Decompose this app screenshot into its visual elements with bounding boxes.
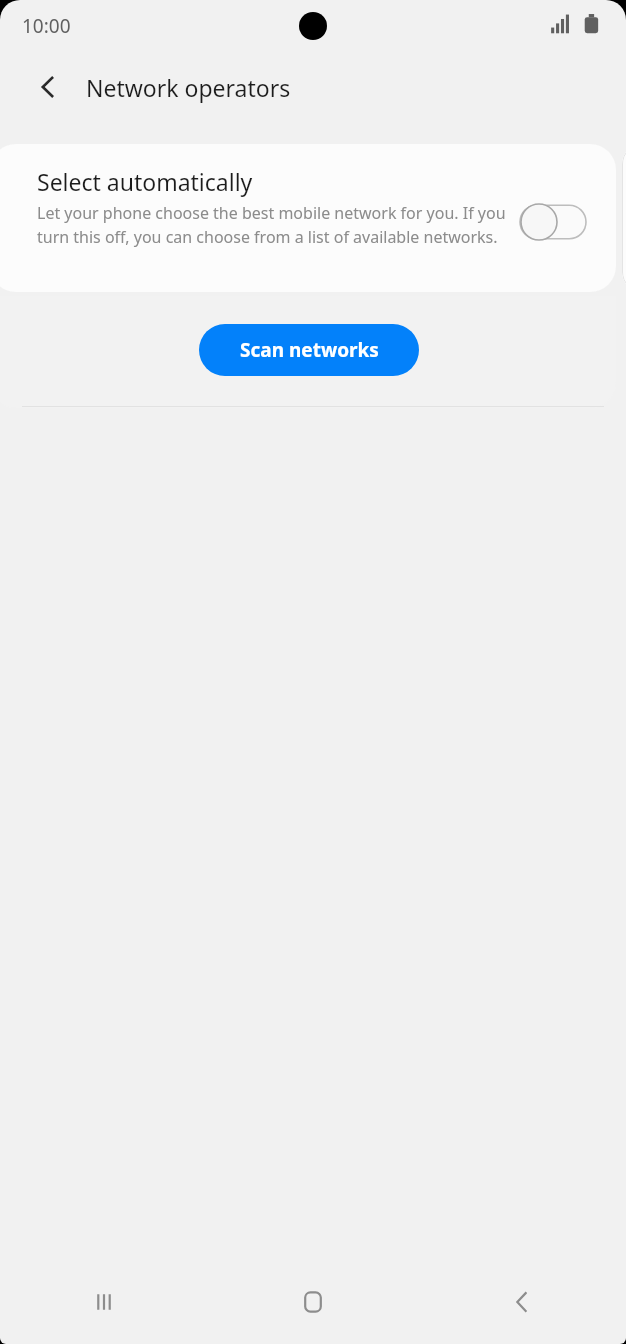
staticText: Let your phone choose the best mobile ne… [37,202,517,248]
staticText: Scan networks [240,337,379,363]
button[interactable]: Recent apps [0,1260,208,1344]
staticText: Select automatically [37,166,253,197]
staticText: Network operators [86,72,291,103]
button[interactable]: Select automatically toggle [517,200,589,244]
button[interactable]: Home [208,1260,417,1344]
button[interactable]: Back [417,1260,626,1344]
button[interactable]: Scan networks [199,324,419,376]
button[interactable]: Select automatically [0,144,616,292]
staticText: 10:00 [22,13,71,39]
button[interactable]: Back [22,61,74,113]
